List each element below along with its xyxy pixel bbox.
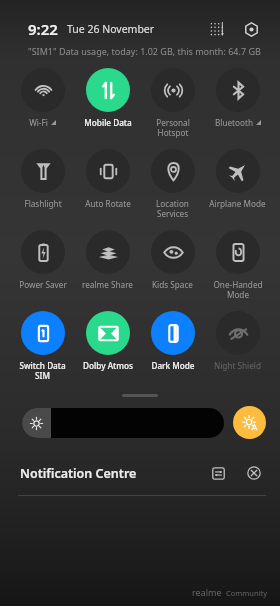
staticText: Mobile Data	[84, 117, 132, 128]
staticText: Community	[226, 588, 268, 598]
button[interactable]: Dark Mode	[140, 311, 205, 371]
staticText: Location Services	[156, 198, 189, 220]
button[interactable]: Dolby Atmos	[75, 311, 140, 371]
button[interactable]: Notification settings	[206, 461, 230, 485]
staticText: Dark Mode	[151, 360, 195, 371]
button[interactable]: Mobile Data	[75, 68, 140, 128]
button[interactable]: Airplane Mode	[205, 149, 270, 209]
staticText: Switch Data SIM	[19, 360, 66, 382]
button[interactable]: Location Services	[140, 149, 205, 220]
button[interactable]: Clear all notifications	[242, 461, 266, 485]
button[interactable]: Settings	[240, 18, 262, 40]
button[interactable]: One-Handed Mode	[205, 230, 270, 301]
button[interactable]: Brightness	[22, 408, 224, 438]
staticText: "SIM1" Data usage, today: 1.02 GB, this …	[28, 45, 261, 57]
staticText: realme	[192, 586, 222, 598]
staticText: One-Handed Mode	[213, 279, 263, 301]
button[interactable]: Wi-Fi	[10, 68, 75, 128]
staticText: Auto Rotate	[85, 198, 131, 209]
button[interactable]: Night Shield	[205, 311, 270, 371]
button[interactable]: Switch Data SIM	[10, 311, 75, 382]
staticText: Bluetooth	[215, 117, 253, 128]
staticText: Night Shield	[214, 360, 261, 371]
staticText: Kids Space	[152, 279, 193, 290]
staticText: Wi-Fi	[29, 117, 48, 128]
button[interactable]: Bluetooth	[205, 68, 270, 128]
button[interactable]: Auto Rotate	[75, 149, 140, 209]
button[interactable]: Auto brightness	[233, 406, 266, 439]
button[interactable]: Flashlight	[10, 149, 75, 209]
button[interactable]: Power Saver	[10, 230, 75, 290]
button[interactable]: Edit tiles	[206, 18, 228, 40]
button[interactable]: Kids Space	[140, 230, 205, 290]
staticText: Personal Hotspot	[156, 117, 190, 139]
staticText: Dolby Atmos	[83, 360, 133, 371]
staticText: Tue 26 November	[67, 22, 155, 36]
staticText: realme Share	[82, 279, 133, 290]
staticText: Airplane Mode	[209, 198, 266, 209]
button[interactable]: Personal Hotspot	[140, 68, 205, 139]
button[interactable]: realme Share	[75, 230, 140, 290]
staticText: Flashlight	[24, 198, 62, 209]
staticText: Power Saver	[19, 279, 67, 290]
staticText: Notification Centre	[20, 465, 137, 482]
staticText: 9:22	[28, 19, 58, 39]
